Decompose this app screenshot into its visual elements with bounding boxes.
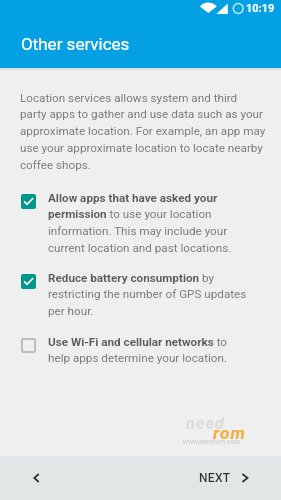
staticText: Reduce battery consumption by restrictin… bbox=[48, 271, 249, 318]
staticText: NEXT bbox=[199, 471, 231, 485]
staticText: 10:19 bbox=[246, 2, 275, 15]
button[interactable]: Allow apps that have asked your permissi… bbox=[0, 193, 281, 257]
button[interactable]: Back bbox=[25, 467, 47, 489]
staticText: www.needrom.com bbox=[183, 438, 241, 446]
button[interactable]: Use Wi-Fi and cellular networks to help … bbox=[0, 337, 281, 367]
staticText: Other services bbox=[21, 34, 130, 54]
button[interactable]: NEXT bbox=[199, 471, 249, 485]
button[interactable]: Reduce battery consumption by restrictin… bbox=[0, 273, 281, 320]
staticText: Location services allows system and thir… bbox=[20, 91, 266, 172]
staticText: Allow apps that have asked your permissi… bbox=[48, 191, 249, 255]
staticText: need bbox=[186, 414, 225, 433]
staticText: Use Wi-Fi and cellular networks to help … bbox=[48, 335, 249, 365]
staticText: rom bbox=[213, 423, 246, 443]
